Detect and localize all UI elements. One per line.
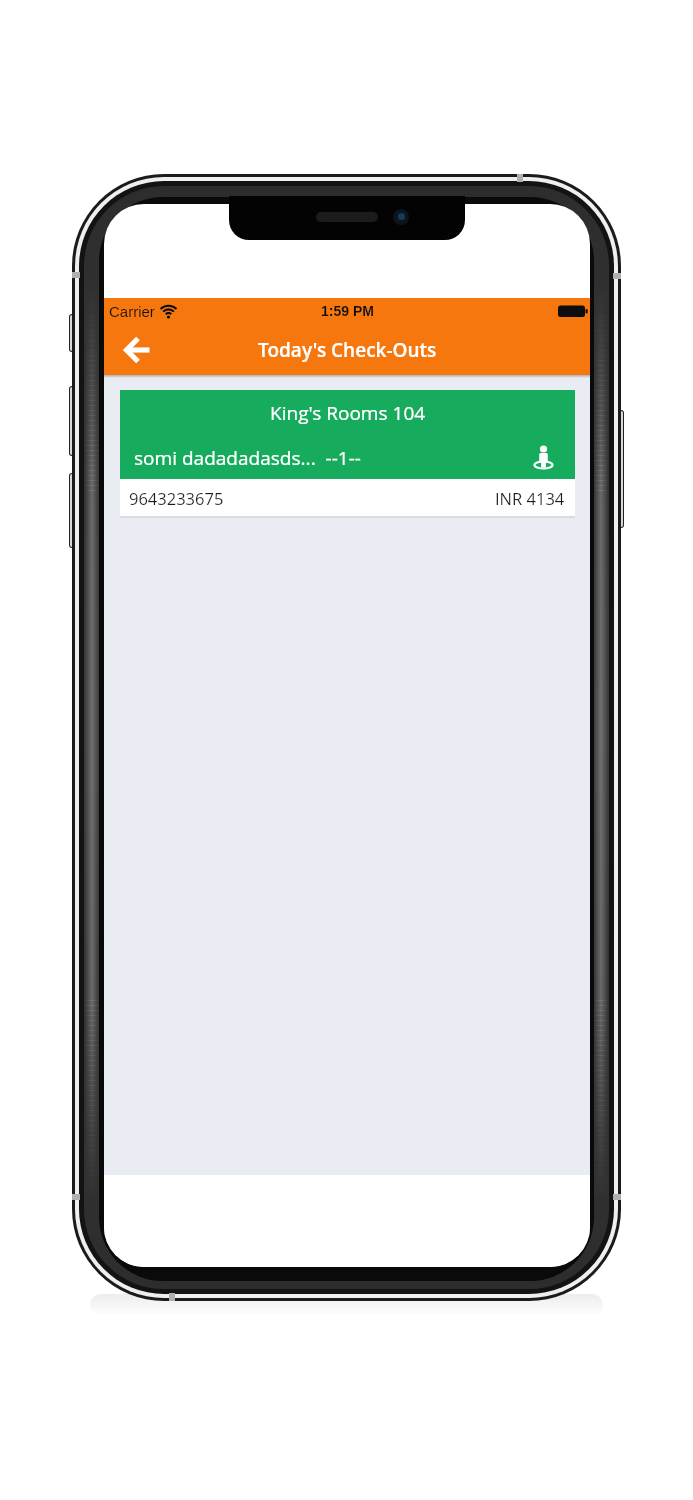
staticText: Today's Check-Outs	[258, 337, 437, 363]
button[interactable]: King's Rooms 104	[120, 390, 575, 518]
staticText: 9643233675	[129, 487, 224, 509]
staticText: somi dadadadasds... --1--	[134, 445, 361, 471]
staticText: King's Rooms 104	[270, 400, 426, 426]
staticText: 1:59 PM	[321, 303, 374, 319]
button[interactable]	[119, 332, 155, 368]
staticText: Carrier	[109, 303, 155, 320]
staticText: INR 4134	[495, 487, 565, 509]
